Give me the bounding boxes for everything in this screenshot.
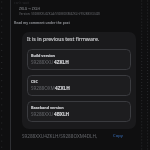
staticText: S9288OXM (31, 85, 55, 91)
staticText: can't wait (14, 0, 30, 5)
staticText: Baseband version (31, 105, 64, 110)
staticText: ZKLG → ZXLH (19, 6, 41, 11)
staticText: Version: S9288XXU4ZKLA/S9288OXM4ZKLH/S92… (19, 12, 101, 16)
staticText: Read my comment under the post (14, 20, 70, 24)
staticText: 4ZKLH (54, 59, 69, 65)
staticText: S9288XXU (31, 111, 54, 117)
staticText: CSC (31, 79, 38, 84)
button[interactable]: CSC (27, 75, 131, 96)
staticText: 4ZXLH (55, 85, 70, 91)
staticText: 4BXLH (54, 111, 70, 117)
button[interactable]: Build version (27, 49, 131, 70)
staticText: S9288XXU4ZKLH/S9288OXM4DLH, (22, 133, 98, 139)
staticText: S9288XXU (31, 59, 54, 65)
button[interactable]: Baseband version (27, 101, 131, 122)
staticText: Build version (31, 53, 55, 58)
staticText: It is in previous test firmware. (27, 35, 100, 42)
button[interactable]: Copy (113, 133, 123, 139)
